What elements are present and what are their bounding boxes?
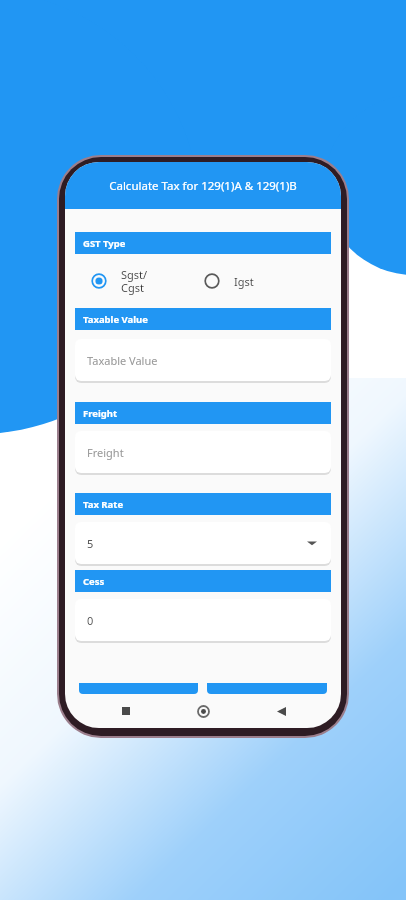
staticText: 0	[87, 613, 94, 628]
staticText: Sgst/ Cgst	[121, 267, 148, 295]
button[interactable]	[79, 683, 198, 694]
staticText: Tax Rate	[83, 498, 124, 511]
staticText: GST Type	[83, 237, 126, 250]
button[interactable]: Recents	[109, 694, 143, 728]
button[interactable]: Back	[264, 694, 298, 728]
staticText: Igst	[234, 274, 254, 289]
staticText: Freight	[83, 407, 118, 420]
button[interactable]: Taxable Value	[75, 339, 331, 381]
button[interactable]: 5	[75, 522, 331, 564]
button[interactable]: 0	[75, 599, 331, 641]
staticText: Freight	[87, 445, 124, 460]
button[interactable]: Home	[186, 694, 220, 728]
staticText: 5	[87, 536, 94, 551]
button[interactable]: Sgst/ Cgst	[91, 267, 148, 295]
staticText: Taxable Value	[87, 353, 158, 368]
button[interactable]: Igst	[204, 273, 254, 289]
button[interactable]: Freight	[75, 431, 331, 473]
staticText: Taxable Value	[83, 313, 148, 326]
staticText: Calculate Tax for 129(1)A & 129(1)B	[109, 178, 297, 194]
button[interactable]	[207, 683, 327, 694]
staticText: Cess	[83, 575, 105, 588]
